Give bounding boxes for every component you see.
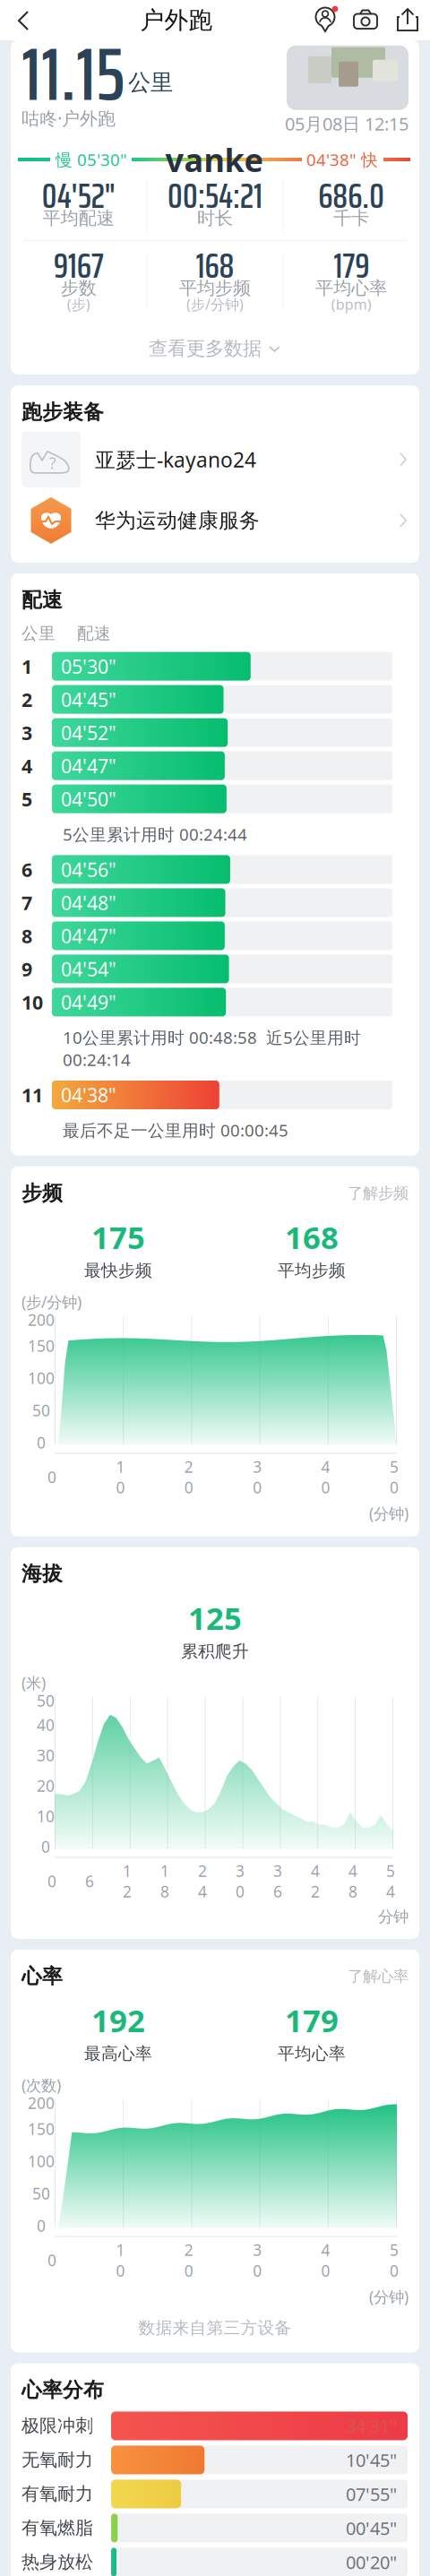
staticText: 05'30": [61, 654, 116, 679]
staticText: 00'20": [346, 2550, 397, 2574]
staticText: 6: [85, 1871, 94, 1891]
staticText: 30: [253, 1457, 262, 1498]
staticText: 热身放松: [21, 2551, 93, 2573]
staticText: 54: [386, 1861, 395, 1902]
staticText: 跑步装备: [21, 400, 104, 425]
staticText: 175: [91, 1216, 145, 1258]
button[interactable]: 了解心率: [348, 1967, 408, 1986]
staticText: 慢 05'30": [50, 148, 132, 171]
staticText: (次数): [21, 2075, 61, 2095]
staticText: 5公里累计用时 00:24:44: [63, 823, 247, 845]
staticText: 100: [28, 1368, 55, 1388]
staticText: 2: [21, 687, 32, 712]
staticText: 5: [21, 786, 32, 812]
staticText: 咕咚·户外跑: [21, 106, 116, 130]
staticText: 30: [37, 1745, 55, 1766]
staticText: 168: [285, 1216, 339, 1258]
staticText: 海拔: [21, 1561, 63, 1586]
staticText: (分钟): [369, 1503, 408, 1524]
staticText: 179: [285, 2000, 339, 2041]
staticText: 40: [37, 1714, 55, 1735]
staticText: 04'49": [61, 989, 116, 1015]
button[interactable]: Camera: [346, 0, 385, 40]
staticText: 11.15: [21, 16, 125, 132]
staticText: 千卡: [334, 207, 369, 229]
button[interactable]: Share: [385, 0, 430, 40]
staticText: 04'54": [61, 956, 116, 982]
staticText: 平均心率: [278, 2044, 346, 2064]
staticText: 42: [311, 1861, 320, 1902]
staticText: 12: [123, 1861, 132, 1902]
staticText: 00:54:21: [168, 169, 262, 223]
staticText: 累积爬升: [181, 1641, 249, 1662]
staticText: 步数: [61, 277, 96, 299]
staticText: 0: [41, 1836, 50, 1857]
staticText: 11: [21, 1082, 43, 1108]
staticText: 150: [28, 2119, 55, 2139]
staticText: 18: [160, 1861, 169, 1902]
staticText: vanke: [165, 138, 263, 181]
button[interactable]: Participants: [306, 0, 346, 40]
staticText: (米): [21, 1672, 46, 1693]
staticText: 30: [236, 1861, 245, 1902]
staticText: 04'50": [61, 786, 116, 812]
staticText: 0: [37, 1432, 46, 1453]
staticText: 40: [321, 2240, 330, 2281]
staticText: 50: [32, 1400, 50, 1421]
staticText: 50: [390, 1457, 399, 1498]
staticText: 50: [390, 2240, 399, 2281]
staticText: 10'45": [346, 2448, 397, 2472]
staticText: 配速: [77, 623, 111, 644]
staticText: 步频: [21, 1181, 63, 1206]
staticText: 20: [184, 1457, 193, 1498]
staticText: 0: [47, 2250, 56, 2271]
staticText: 04'47": [61, 923, 116, 948]
staticText: 36: [273, 1861, 282, 1902]
button[interactable]: ?: [11, 425, 419, 487]
staticText: 有氧燃脂: [21, 2517, 93, 2539]
staticText: 了解心率: [348, 1967, 408, 1986]
staticText: 686.0: [318, 169, 385, 223]
staticText: 心率: [21, 1964, 63, 1989]
staticText: 最后不足一公里用时 00:00:45: [63, 1119, 288, 1141]
staticText: 数据来自第三方设备: [138, 2318, 292, 2338]
staticText: 配速: [21, 588, 63, 613]
staticText: 04'48": [61, 890, 116, 915]
staticText: 公里: [128, 69, 173, 96]
staticText: 时长: [197, 207, 233, 229]
button[interactable]: 了解步频: [348, 1184, 408, 1203]
staticText: 50: [32, 2183, 50, 2204]
staticText: 0: [47, 1871, 56, 1891]
staticText: 100: [28, 2151, 55, 2172]
staticText: 179: [334, 238, 369, 293]
button[interactable]: Back: [0, 0, 47, 40]
staticText: 平均配速: [43, 207, 114, 229]
staticText: 30: [253, 2240, 262, 2281]
staticText: 最快步频: [84, 1260, 152, 1281]
staticText: 极限冲刺: [21, 2415, 93, 2437]
staticText: 10: [116, 1457, 125, 1498]
staticText: 50: [37, 1690, 55, 1711]
staticText: (步/分钟): [186, 295, 244, 314]
staticText: 华为运动健康服务: [95, 508, 260, 533]
staticText: 了解步频: [348, 1184, 408, 1203]
staticText: 10公里累计用时 00:48:58 近5公里用时 00:24:14: [63, 1026, 361, 1071]
staticText: (分钟): [369, 2286, 408, 2307]
staticText: 8: [21, 923, 32, 948]
staticText: 平均步频: [278, 1260, 346, 1281]
staticText: 40: [321, 1457, 330, 1498]
staticText: 24: [198, 1861, 207, 1902]
staticText: 有氧耐力: [21, 2483, 93, 2505]
staticText: 0: [37, 2215, 46, 2236]
staticText: 200: [28, 1310, 55, 1330]
staticText: 20: [184, 2240, 193, 2281]
staticText: 4: [21, 753, 32, 778]
staticText: 9: [21, 956, 32, 982]
staticText: 3: [21, 720, 32, 745]
button[interactable]: 华为运动健康服务: [11, 487, 419, 563]
button[interactable]: 查看更多数据: [11, 323, 419, 375]
staticText: 平均步频: [179, 277, 251, 299]
staticText: 0: [47, 1467, 56, 1487]
staticText: 04'38": [61, 1082, 116, 1108]
staticText: 05月08日 12:15: [285, 112, 408, 136]
